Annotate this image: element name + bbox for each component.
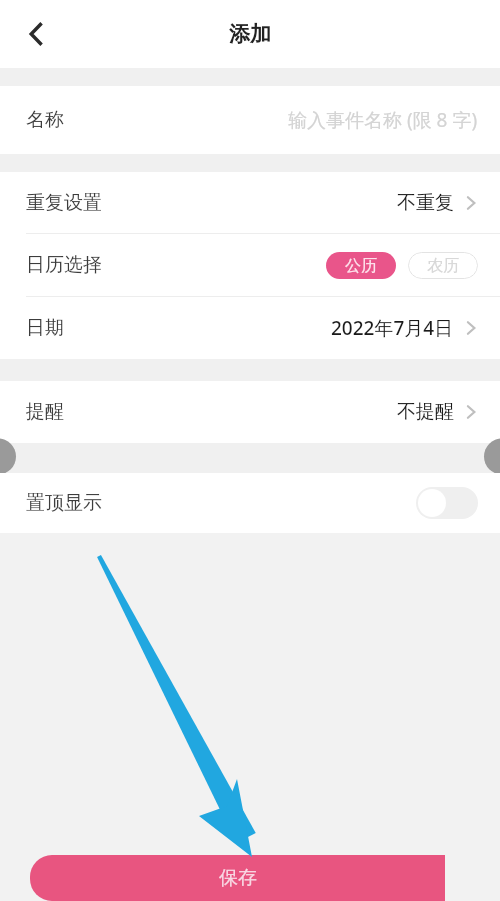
button[interactable]: 置顶显示 (0, 473, 500, 533)
button[interactable]: 重复设置 (0, 172, 500, 233)
staticText: 重复设置 (26, 191, 102, 215)
staticText: 输入事件名称 (限 8 字) (288, 107, 478, 133)
staticText: 日期 (26, 316, 64, 340)
staticText: 置顶显示 (26, 491, 102, 515)
staticText: 名称 (26, 108, 64, 132)
button[interactable]: 日期 (0, 297, 500, 359)
staticText: 不提醒 (397, 400, 454, 424)
button[interactable]: 名称 (0, 86, 500, 154)
staticText: 2022年7月4日 (331, 315, 454, 341)
staticText: 公历 (345, 256, 377, 276)
button[interactable]: 保存 (30, 855, 445, 901)
button[interactable]: 置顶显示 toggle (416, 487, 478, 519)
button[interactable]: 提醒 (0, 381, 500, 443)
staticText: 不重复 (397, 191, 454, 215)
staticText: 日历选择 (26, 253, 102, 277)
staticText: 添加 (229, 21, 271, 47)
staticText: 提醒 (26, 400, 64, 424)
button[interactable]: 公历 (326, 252, 396, 279)
staticText: 农历 (427, 256, 459, 276)
button[interactable]: Back (12, 10, 60, 58)
button[interactable]: 农历 (408, 252, 478, 279)
staticText: 保存 (219, 866, 257, 890)
